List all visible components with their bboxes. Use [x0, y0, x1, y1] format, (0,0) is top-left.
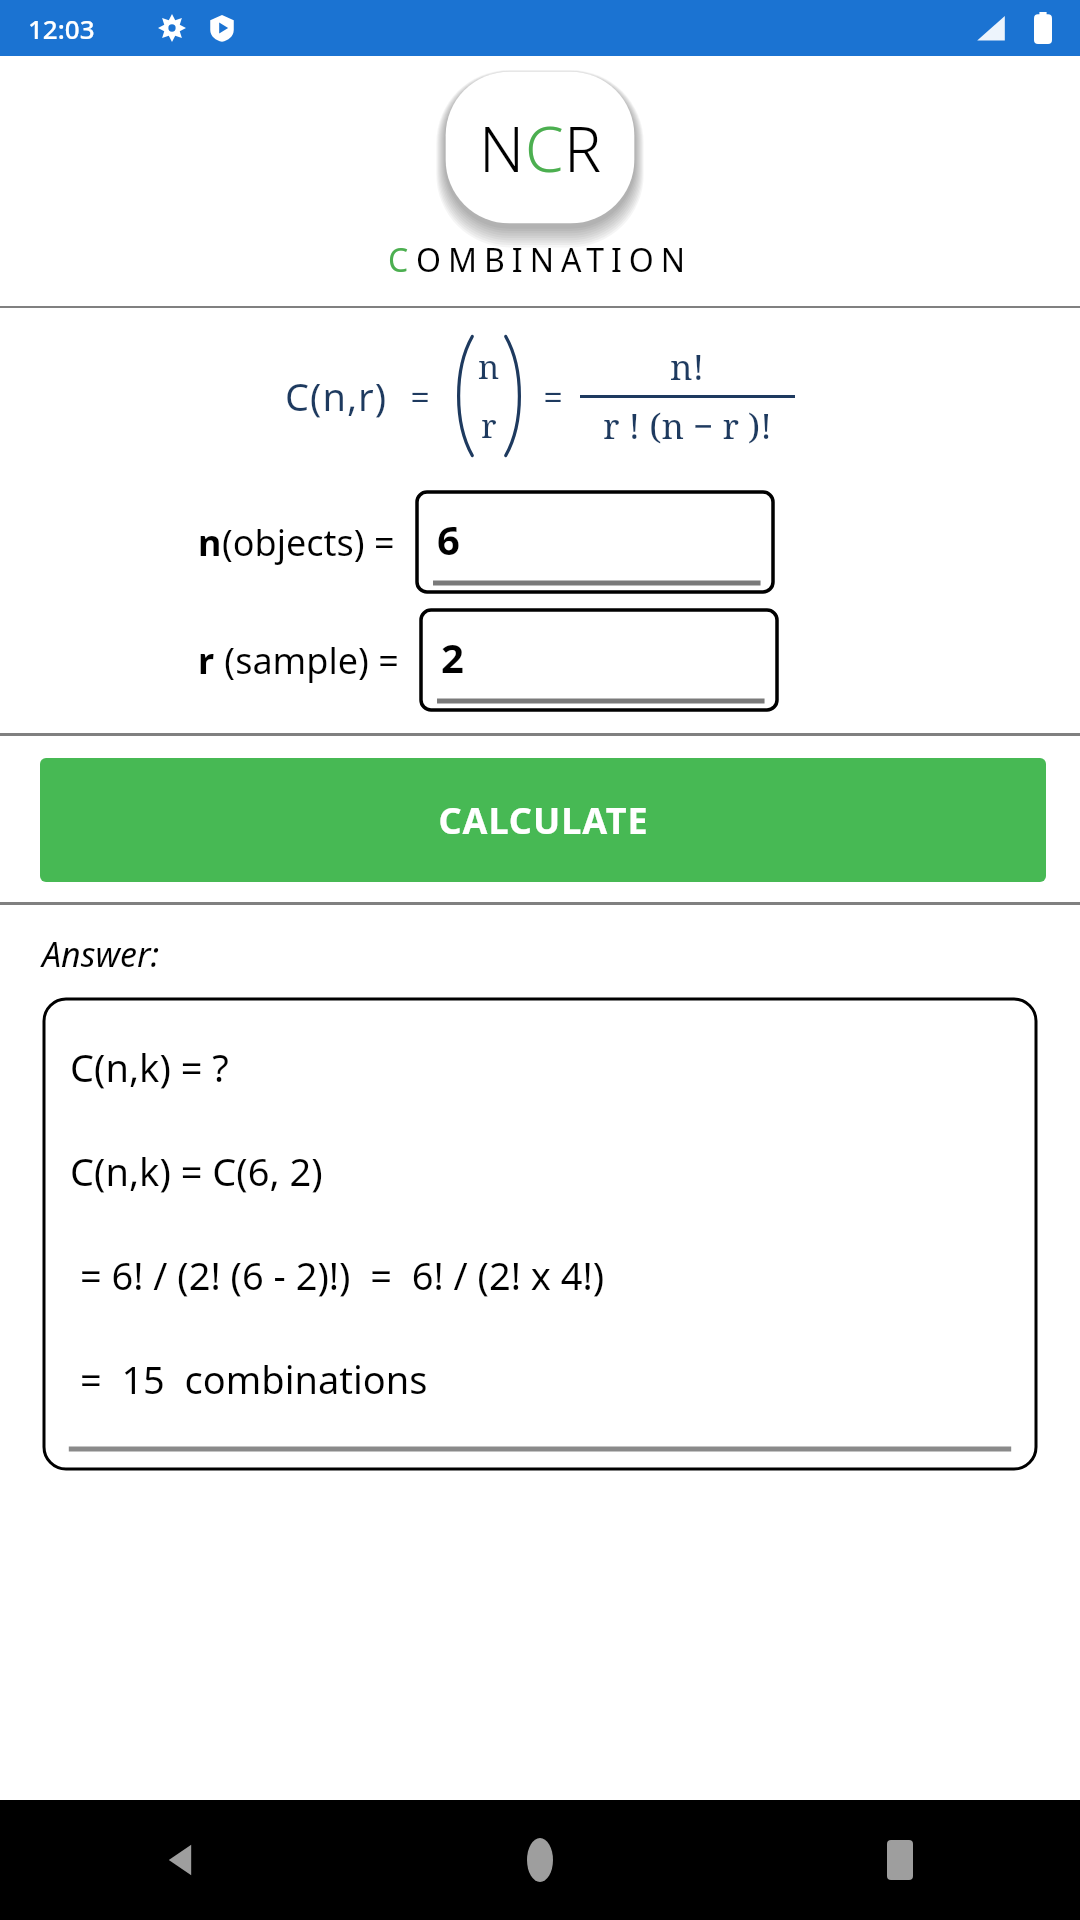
staticText: = [410, 372, 431, 421]
staticText: R [564, 106, 602, 190]
button[interactable]: 2 [421, 610, 777, 710]
staticText: C(n,r) [285, 370, 388, 422]
staticText: C [388, 238, 416, 282]
staticText: 12:03 [28, 11, 95, 46]
staticText: r ! (n − r )! [603, 402, 772, 450]
staticText: n [478, 344, 500, 389]
staticText: n [198, 518, 222, 567]
staticText: r [481, 403, 497, 448]
staticText: CALCULATE [438, 796, 649, 845]
button[interactable]: Recents [720, 1800, 1080, 1920]
staticText: (objects) = [222, 518, 395, 567]
staticText: N [479, 106, 525, 190]
staticText: = 15 combinations [70, 1353, 428, 1405]
staticText: (sample) = [215, 636, 399, 685]
button[interactable]: Home [360, 1800, 720, 1920]
staticText: = [543, 372, 564, 421]
staticText: C(n,k) = C(6, 2) [70, 1145, 323, 1197]
staticText: = 6! / (2! (6 - 2)!) = 6! / (2! x 4!) [70, 1249, 605, 1301]
staticText: 6 [437, 512, 460, 566]
staticText: 2 [441, 630, 464, 684]
button[interactable]: 6 [417, 492, 773, 592]
button[interactable]: Back [0, 1800, 360, 1920]
staticText: OMBINATION [416, 238, 693, 282]
staticText: C [525, 106, 564, 190]
staticText: n! [670, 343, 705, 391]
staticText: Answer: [42, 931, 160, 977]
button[interactable]: CALCULATE [40, 758, 1046, 882]
staticText: r [198, 636, 215, 685]
staticText: C(n,k) = ? [70, 1041, 229, 1093]
